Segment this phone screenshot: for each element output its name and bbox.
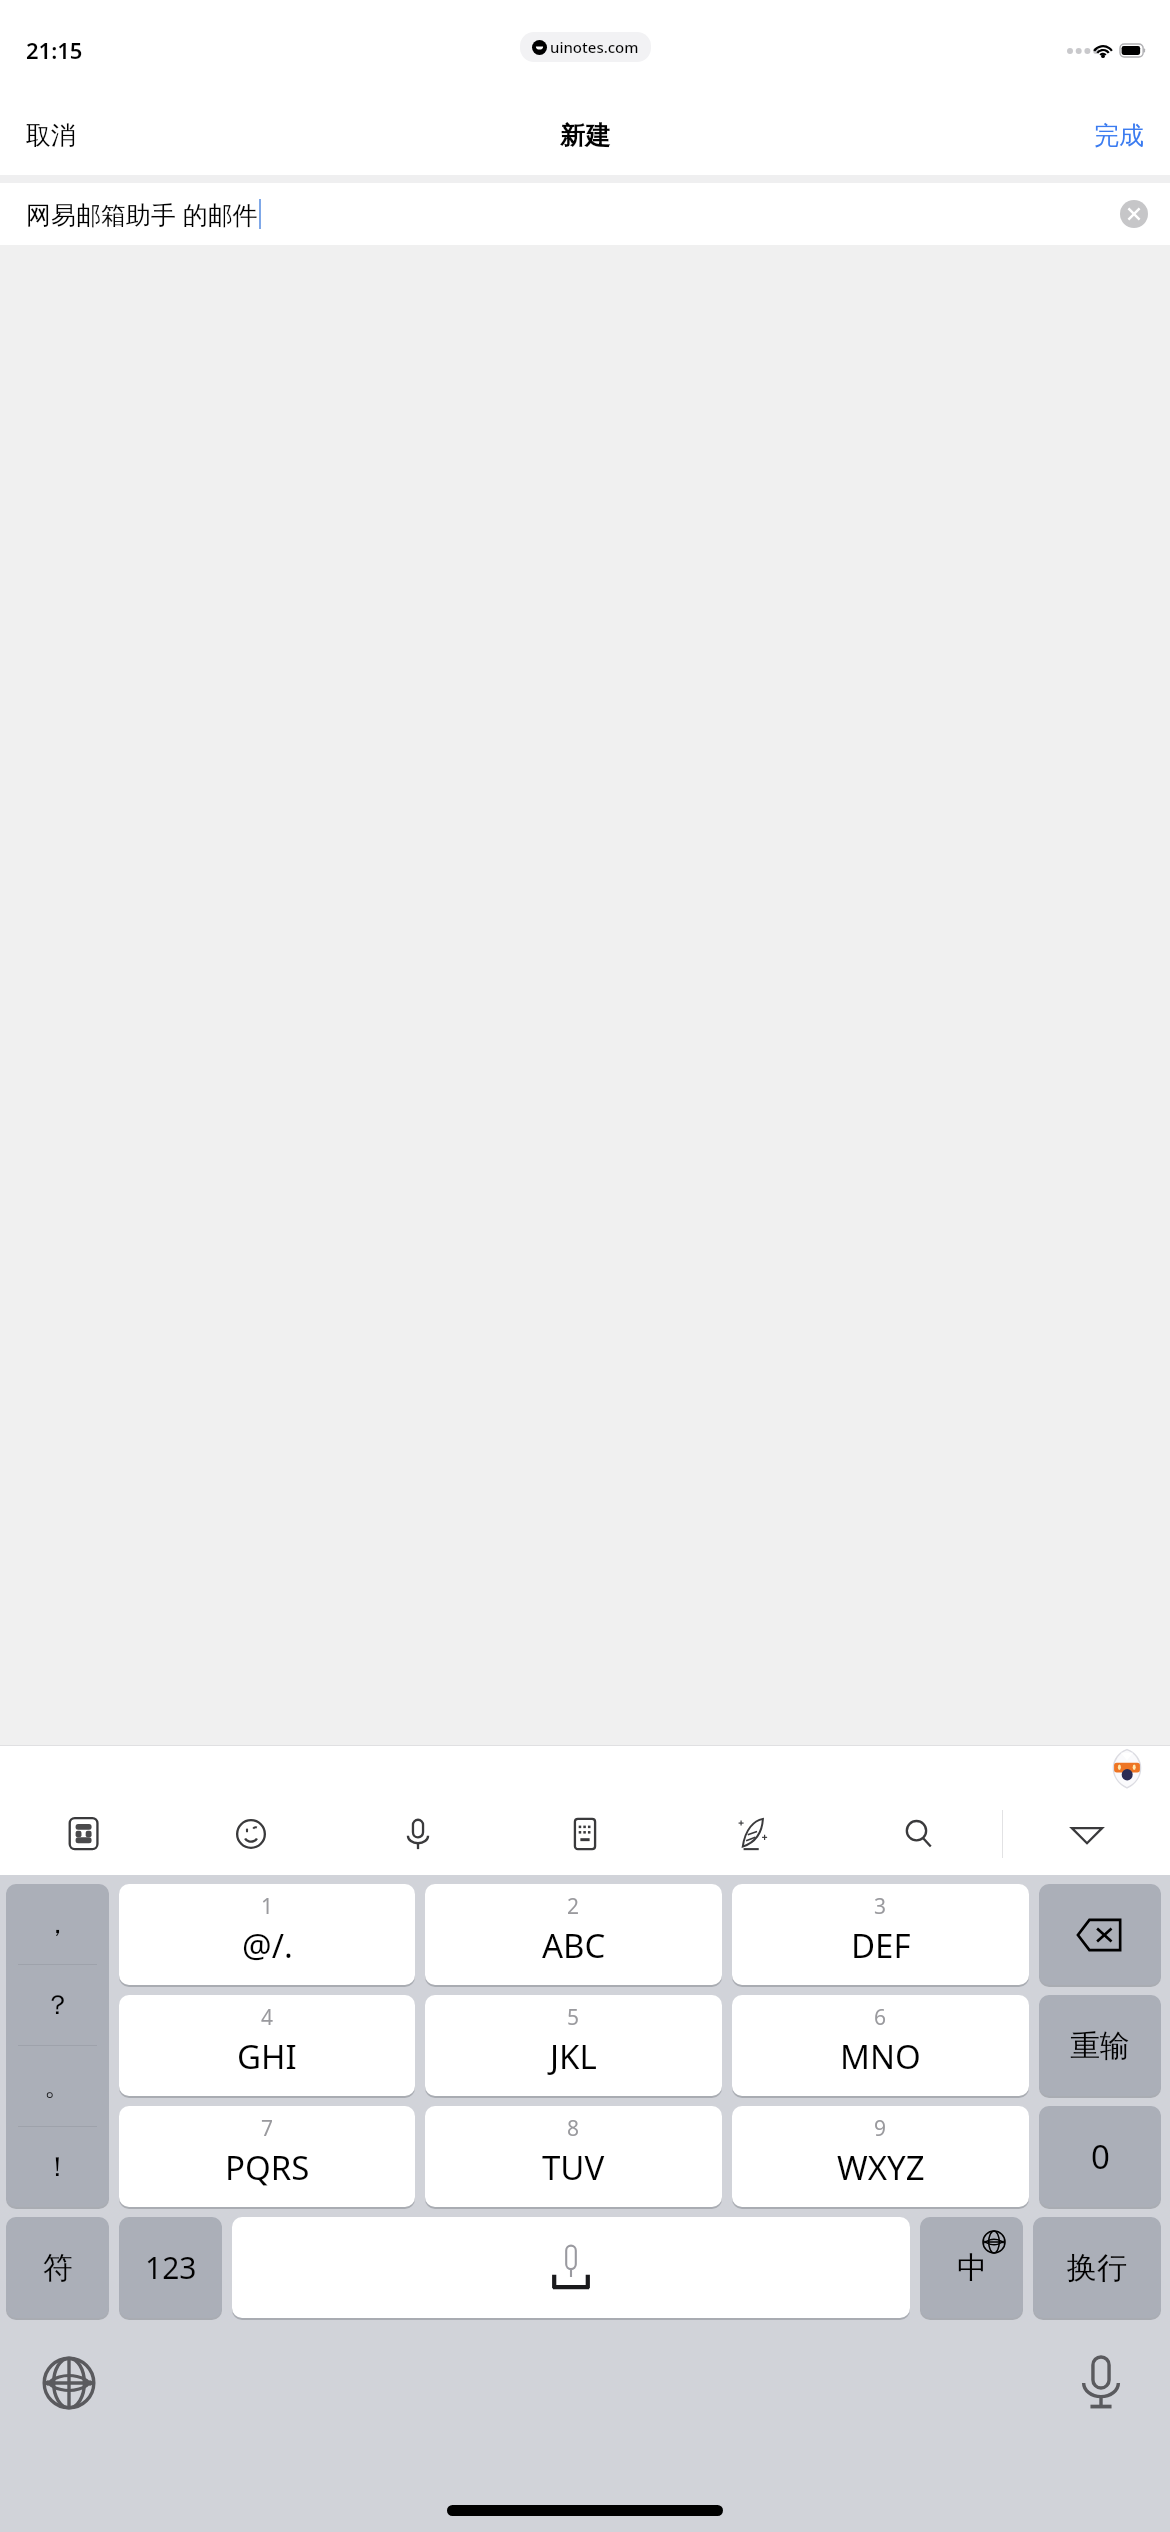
button[interactable]: Sticker bbox=[1108, 1747, 1146, 1791]
staticText: 5 bbox=[567, 2003, 580, 2032]
staticText: 取消 bbox=[26, 120, 76, 151]
staticText: 8 bbox=[567, 2114, 580, 2143]
button[interactable]: 网易邮箱助手 的邮件 bbox=[0, 183, 1170, 245]
button[interactable]: 9 bbox=[732, 2106, 1029, 2209]
staticText: ， bbox=[44, 1907, 71, 1941]
button[interactable]: 取消 bbox=[0, 96, 102, 175]
staticText: 9 bbox=[874, 2114, 887, 2143]
button[interactable]: 重输 bbox=[1039, 1995, 1161, 2098]
staticText: WXYZ bbox=[837, 2145, 925, 2190]
button[interactable]: ， bbox=[6, 1884, 109, 2209]
staticText: 21:15 bbox=[26, 35, 83, 65]
staticText: ！ bbox=[44, 2150, 71, 2184]
staticText: 完成 bbox=[1094, 120, 1144, 151]
staticText: MNO bbox=[840, 2034, 921, 2079]
button[interactable]: 3 bbox=[732, 1884, 1029, 1987]
staticText: 4 bbox=[261, 2003, 274, 2032]
staticText: 新建 bbox=[560, 120, 610, 151]
button[interactable]: Voice bbox=[334, 1793, 501, 1875]
button[interactable]: Handwriting bbox=[668, 1793, 835, 1875]
button[interactable]: Switch language bbox=[920, 2217, 1023, 2320]
button[interactable]: 5 bbox=[425, 1995, 722, 2098]
button[interactable]: Emoji bbox=[167, 1793, 334, 1875]
staticText: uinotes.com bbox=[550, 37, 639, 57]
staticText: 符 bbox=[43, 2249, 73, 2287]
button[interactable]: Keyboard layout bbox=[501, 1793, 668, 1875]
staticText: ABC bbox=[542, 1923, 606, 1968]
button[interactable]: 0 bbox=[1039, 2106, 1161, 2209]
button[interactable]: Delete bbox=[1039, 1884, 1161, 1987]
staticText: JKL bbox=[550, 2034, 597, 2079]
staticText: 换行 bbox=[1067, 2249, 1127, 2287]
button[interactable]: 换行 bbox=[1033, 2217, 1161, 2320]
staticText: GHI bbox=[237, 2034, 297, 2079]
staticText: 中 bbox=[957, 2249, 987, 2287]
staticText: 1 bbox=[261, 1892, 274, 1921]
button[interactable]: Sogou bbox=[0, 1793, 167, 1875]
button[interactable]: Search bbox=[835, 1793, 1002, 1875]
button[interactable]: 8 bbox=[425, 2106, 722, 2209]
button[interactable]: Globe, change keyboard bbox=[38, 2352, 100, 2414]
button[interactable]: 完成 bbox=[1068, 96, 1170, 175]
staticText: 0 bbox=[1091, 2134, 1110, 2179]
staticText: 3 bbox=[874, 1892, 887, 1921]
button[interactable]: Voice input bbox=[1070, 2352, 1132, 2414]
button[interactable]: 4 bbox=[119, 1995, 415, 2098]
button[interactable]: 符 bbox=[6, 2217, 109, 2320]
staticText: @/. bbox=[242, 1923, 293, 1968]
button[interactable]: 123 bbox=[119, 2217, 222, 2320]
staticText: 6 bbox=[874, 2003, 887, 2032]
staticText: 重输 bbox=[1070, 2027, 1130, 2065]
staticText: PQRS bbox=[225, 2145, 310, 2190]
staticText: DEF bbox=[851, 1923, 911, 1968]
staticText: 7 bbox=[261, 2114, 274, 2143]
button[interactable]: 1 bbox=[119, 1884, 415, 1987]
button[interactable]: 6 bbox=[732, 1995, 1029, 2098]
staticText: 2 bbox=[567, 1892, 580, 1921]
staticText: 。 bbox=[44, 2069, 71, 2103]
button[interactable]: 2 bbox=[425, 1884, 722, 1987]
button[interactable]: 7 bbox=[119, 2106, 415, 2209]
button[interactable]: Hide keyboard bbox=[1003, 1793, 1170, 1875]
staticText: 123 bbox=[145, 2247, 197, 2288]
staticText: ？ bbox=[44, 1988, 71, 2022]
button[interactable]: Clear text bbox=[1120, 200, 1148, 228]
button[interactable]: Space, voice input bbox=[232, 2217, 910, 2320]
staticText: 网易邮箱助手 的邮件 bbox=[26, 197, 258, 231]
staticText: TUV bbox=[542, 2145, 605, 2190]
